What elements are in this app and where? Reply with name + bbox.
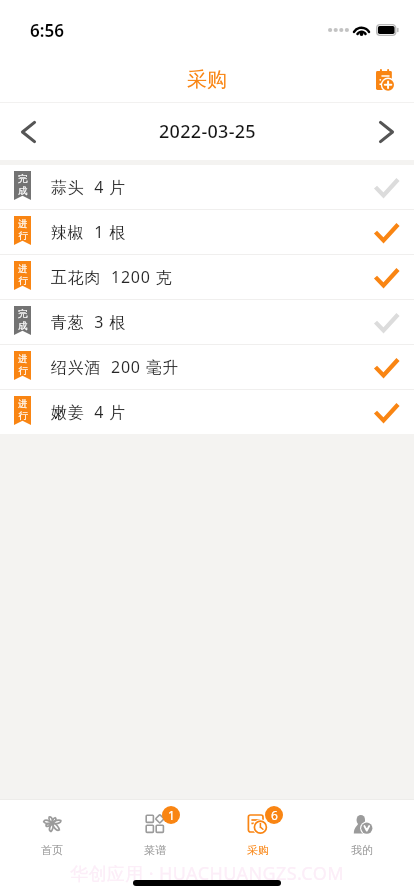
button[interactable]: Next day [358, 103, 414, 160]
staticText: 蒜头 4 片 [51, 176, 126, 198]
staticText: 五花肉 1200 克 [51, 266, 173, 288]
button[interactable]: 进 [0, 390, 414, 434]
staticText: 6:56 [30, 19, 64, 42]
button[interactable]: 完 [0, 300, 414, 344]
staticText: 行 [18, 230, 28, 242]
staticText: 1 [168, 807, 175, 823]
staticText: 行 [18, 275, 28, 287]
staticText: 2022-03-25 [159, 119, 256, 144]
staticText: 完 [18, 173, 28, 185]
staticText: 成 [18, 185, 28, 197]
staticText: 菜谱 [144, 843, 166, 857]
button[interactable]: 进 [0, 210, 414, 254]
staticText: 采购 [187, 67, 227, 92]
staticText: 进 [18, 263, 28, 275]
button[interactable]: 首页 [0, 800, 103, 862]
button[interactable]: New purchase list [366, 59, 404, 97]
staticText: 进 [18, 353, 28, 365]
staticText: 完 [18, 308, 28, 320]
staticText: 嫩姜 4 片 [51, 401, 126, 423]
staticText: 采购 [247, 843, 269, 857]
staticText: 成 [18, 320, 28, 332]
staticText: 行 [18, 365, 28, 377]
button[interactable]: 进 [0, 255, 414, 299]
button[interactable]: 6 [206, 800, 310, 862]
button[interactable]: 我的 [310, 800, 414, 862]
staticText: 青葱 3 根 [51, 311, 126, 333]
button[interactable]: 进 [0, 345, 414, 389]
button[interactable]: Previous day [0, 103, 56, 160]
staticText: 绍兴酒 200 毫升 [51, 356, 180, 378]
staticText: 首页 [41, 843, 63, 857]
staticText: 华创应用 · HUACHUANGZS.COM [70, 861, 344, 886]
staticText: 行 [18, 410, 28, 422]
staticText: 6 [271, 807, 278, 823]
staticText: 我的 [351, 843, 373, 857]
staticText: 进 [18, 218, 28, 230]
button[interactable]: 1 [103, 800, 206, 862]
button[interactable]: 完 [0, 165, 414, 209]
staticText: 进 [18, 398, 28, 410]
staticText: 辣椒 1 根 [51, 221, 126, 243]
